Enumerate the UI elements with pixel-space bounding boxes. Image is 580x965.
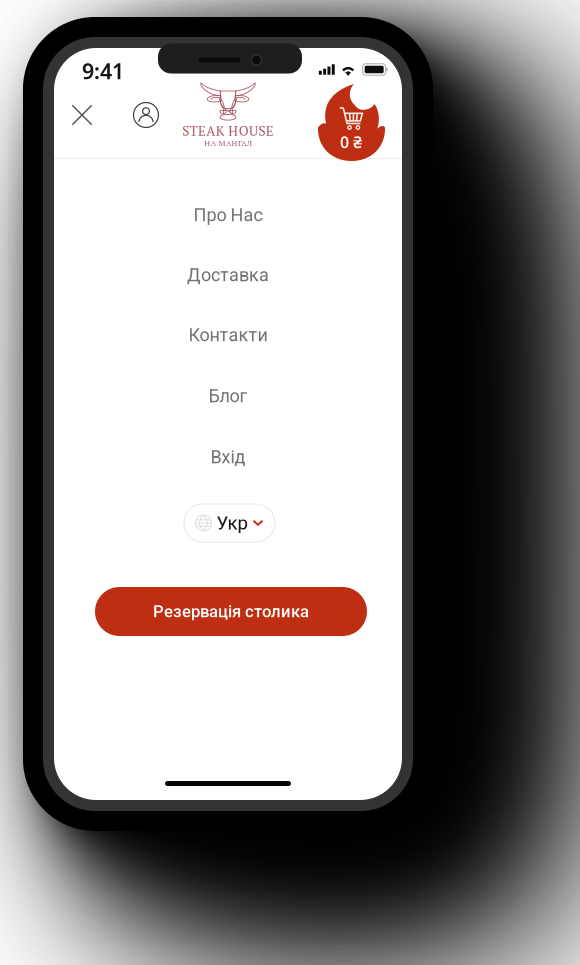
button[interactable]: Вхід — [54, 427, 402, 487]
staticText: Блог — [208, 385, 247, 407]
staticText: STEAK HOUSE — [182, 122, 274, 140]
button[interactable]: Укр — [184, 504, 275, 542]
staticText: Про Нас — [193, 204, 262, 226]
button[interactable]: Steak House на мангал — [148, 81, 308, 153]
button[interactable]: Account — [123, 92, 169, 138]
staticText: НА МАНГАЛ — [204, 138, 252, 148]
button[interactable]: Резервація столика — [95, 587, 367, 636]
staticText: 9:41 — [82, 57, 124, 85]
button[interactable]: Про Нас — [54, 185, 402, 245]
staticText: Контакти — [188, 324, 267, 346]
staticText: Резервація столика — [153, 602, 309, 621]
button[interactable]: Close — [59, 92, 105, 138]
button[interactable]: Доставка — [54, 245, 402, 305]
button[interactable]: Контакти — [54, 305, 402, 365]
staticText: 0 ₴ — [340, 131, 362, 153]
staticText: Доставка — [187, 264, 269, 286]
staticText: Вхід — [210, 446, 245, 468]
button[interactable]: Cart, 0 hryvnia — [318, 84, 385, 161]
staticText: Укр — [216, 512, 247, 534]
button[interactable]: Блог — [54, 366, 402, 426]
